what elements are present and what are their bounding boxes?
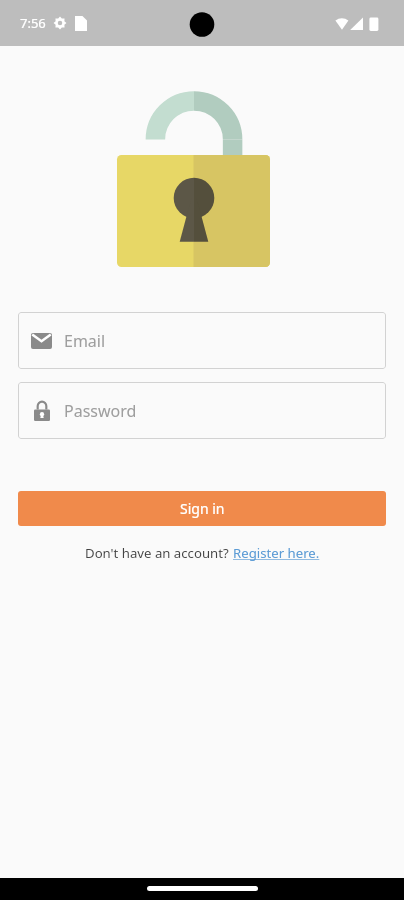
staticText: Register here. [233,544,320,562]
staticText: Sign in [180,499,225,518]
staticText: Password [64,400,137,422]
other: Home [147,886,258,891]
staticText: Don't have an account? [85,544,233,562]
staticText: 7:56 [20,14,46,32]
button[interactable]: Sign in [18,491,386,526]
button[interactable]: Password [18,382,386,439]
button[interactable]: Register here. [233,544,320,562]
button[interactable]: Email [18,312,386,369]
staticText: Email [64,330,106,352]
